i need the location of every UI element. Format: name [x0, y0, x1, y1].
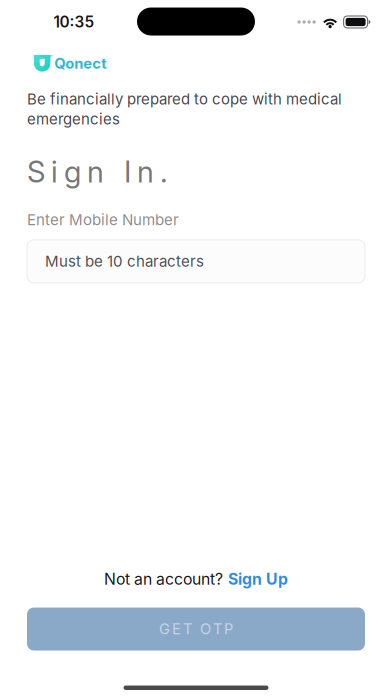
- button[interactable]: Sign Up: [228, 569, 288, 588]
- staticText: Be financially prepared to cope with med…: [27, 90, 342, 128]
- staticText: 10:35: [53, 13, 94, 31]
- staticText: Not an account?: [104, 569, 223, 588]
- staticText: Must be 10 characters: [45, 252, 204, 270]
- button[interactable]: Must be 10 characters: [27, 240, 365, 283]
- staticText: Qonect: [54, 55, 106, 72]
- button[interactable]: GET OTP: [27, 607, 365, 650]
- staticText: Sign In.: [27, 154, 168, 190]
- staticText: Sign Up: [228, 569, 288, 588]
- staticText: GET OTP: [159, 620, 233, 638]
- staticText: Enter Mobile Number: [27, 211, 179, 229]
